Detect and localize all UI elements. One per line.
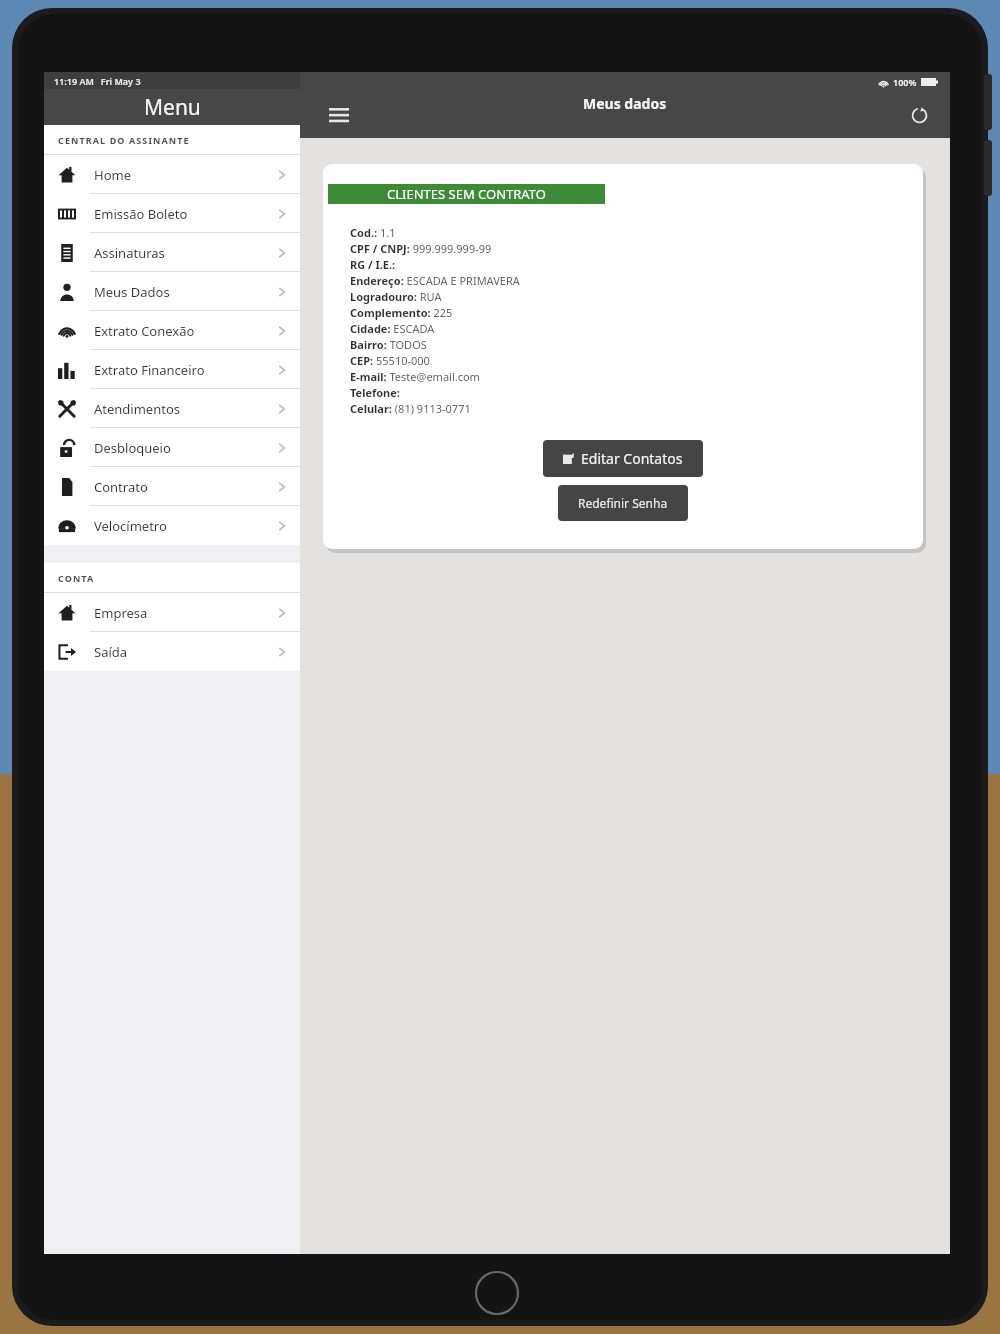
button[interactable]: Redefinir Senha <box>558 485 688 521</box>
button[interactable]: Empresa <box>44 593 300 632</box>
button[interactable]: Home <box>44 155 300 194</box>
staticText: Redefinir Senha <box>578 495 668 511</box>
button[interactable]: Contrato <box>44 467 300 506</box>
staticText: E-mail: Teste@email.com <box>350 369 480 385</box>
staticText: Bairro: TODOS <box>350 337 427 353</box>
staticText: Endereço: ESCADA E PRIMAVERA <box>350 273 520 289</box>
staticText: Empresa <box>94 604 148 622</box>
button[interactable]: Atendimentos <box>44 389 300 428</box>
staticText: Contrato <box>94 478 148 496</box>
staticText: Assinaturas <box>94 244 165 262</box>
button[interactable]: Menu <box>322 98 356 132</box>
button[interactable]: Assinaturas <box>44 233 300 272</box>
staticText: Extrato Financeiro <box>94 361 205 379</box>
staticText: CENTRAL DO ASSINANTE <box>58 134 190 146</box>
staticText: Meus dados <box>583 94 667 113</box>
staticText: 100% <box>893 76 917 88</box>
staticText: RG / I.E.: <box>350 257 399 273</box>
button[interactable]: Refresh <box>902 98 936 132</box>
staticText: Celular: (81) 9113-0771 <box>350 401 471 417</box>
staticText: Menu <box>144 93 201 122</box>
staticText: Extrato Conexão <box>94 322 195 340</box>
button[interactable]: Desbloqueio <box>44 428 300 467</box>
staticText: CONTA <box>58 572 95 584</box>
staticText: Saída <box>94 643 128 661</box>
button[interactable]: Extrato Conexão <box>44 311 300 350</box>
staticText: 11:19 AM Fri May 3 <box>54 75 141 87</box>
button[interactable]: Meus Dados <box>44 272 300 311</box>
staticText: Telefone: <box>350 385 403 401</box>
staticText: Home <box>94 166 131 184</box>
staticText: Meus Dados <box>94 283 170 301</box>
button[interactable]: Emissão Boleto <box>44 194 300 233</box>
button[interactable]: Saída <box>44 632 300 671</box>
staticText: Cidade: ESCADA <box>350 321 435 337</box>
button[interactable]: Editar Contatos <box>543 440 703 477</box>
staticText: Atendimentos <box>94 400 181 418</box>
staticText: Complemento: 225 <box>350 305 453 321</box>
staticText: Emissão Boleto <box>94 205 188 223</box>
staticText: Logradouro: RUA <box>350 289 442 305</box>
staticText: Desbloqueio <box>94 439 171 457</box>
staticText: Editar Contatos <box>581 449 683 468</box>
staticText: CPF / CNPJ: 999.999.999-99 <box>350 241 492 257</box>
staticText: CLIENTES SEM CONTRATO <box>387 185 546 203</box>
staticText: Velocímetro <box>94 517 167 535</box>
button[interactable]: Velocímetro <box>44 506 300 545</box>
staticText: CEP: 55510-000 <box>350 353 430 369</box>
staticText: Cod.: 1.1 <box>350 225 396 241</box>
button[interactable]: Extrato Financeiro <box>44 350 300 389</box>
